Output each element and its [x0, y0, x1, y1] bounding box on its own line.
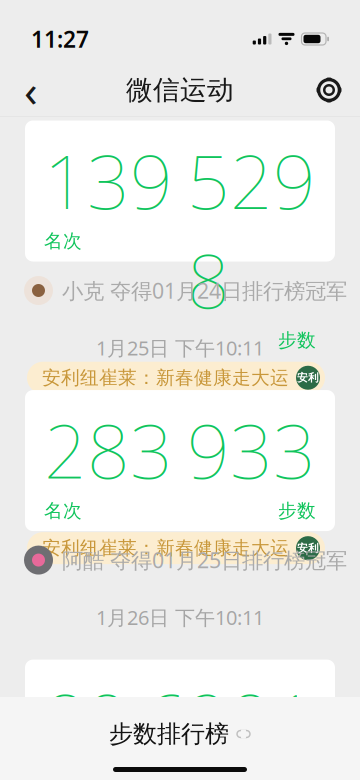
staticText: ‹ [24, 61, 38, 119]
button[interactable]: 小克 夺得01月24日排行榜冠军 [0, 274, 360, 306]
staticText: 步数 [278, 329, 316, 352]
button[interactable]: 89 [25, 660, 335, 780]
staticText: 步数排行榜 [109, 719, 229, 749]
staticText: 步数 [278, 499, 316, 522]
staticText: 安利纽崔莱：新春健康走大运 [42, 366, 289, 389]
staticText: 89 [44, 670, 130, 769]
staticText: 933 [187, 400, 316, 499]
staticText: 6291 [144, 670, 316, 769]
staticText: 139 [44, 130, 173, 230]
staticText: 安利 [297, 371, 319, 384]
staticText: 名次 [44, 230, 82, 253]
staticText: 283 [44, 400, 173, 499]
staticText: 微信运动 [126, 74, 234, 106]
button[interactable]: 返回 [9, 68, 53, 112]
staticText: 1月26日 下午10:11 [96, 604, 264, 631]
button[interactable]: 步数排行榜 [109, 711, 251, 757]
staticText: 1月25日 下午10:11 [96, 334, 264, 361]
button[interactable]: 139 [25, 120, 335, 261]
staticText: 安利纽崔莱：新春健康走大运 [42, 537, 289, 560]
button[interactable]: 283 [25, 390, 335, 531]
staticText: 小克 夺得01月24日排行榜冠军 [62, 276, 347, 305]
staticText: 名次 [44, 499, 82, 522]
staticText: 安利 [297, 542, 319, 555]
button[interactable]: 阿酷 夺得01月25日排行榜冠军 [0, 544, 360, 576]
staticText: 阿酷 夺得01月25日排行榜冠军 [62, 546, 347, 574]
staticText: 5298 [187, 130, 316, 329]
button[interactable]: 设置 [307, 68, 351, 112]
staticText: 11:27 [31, 24, 89, 54]
